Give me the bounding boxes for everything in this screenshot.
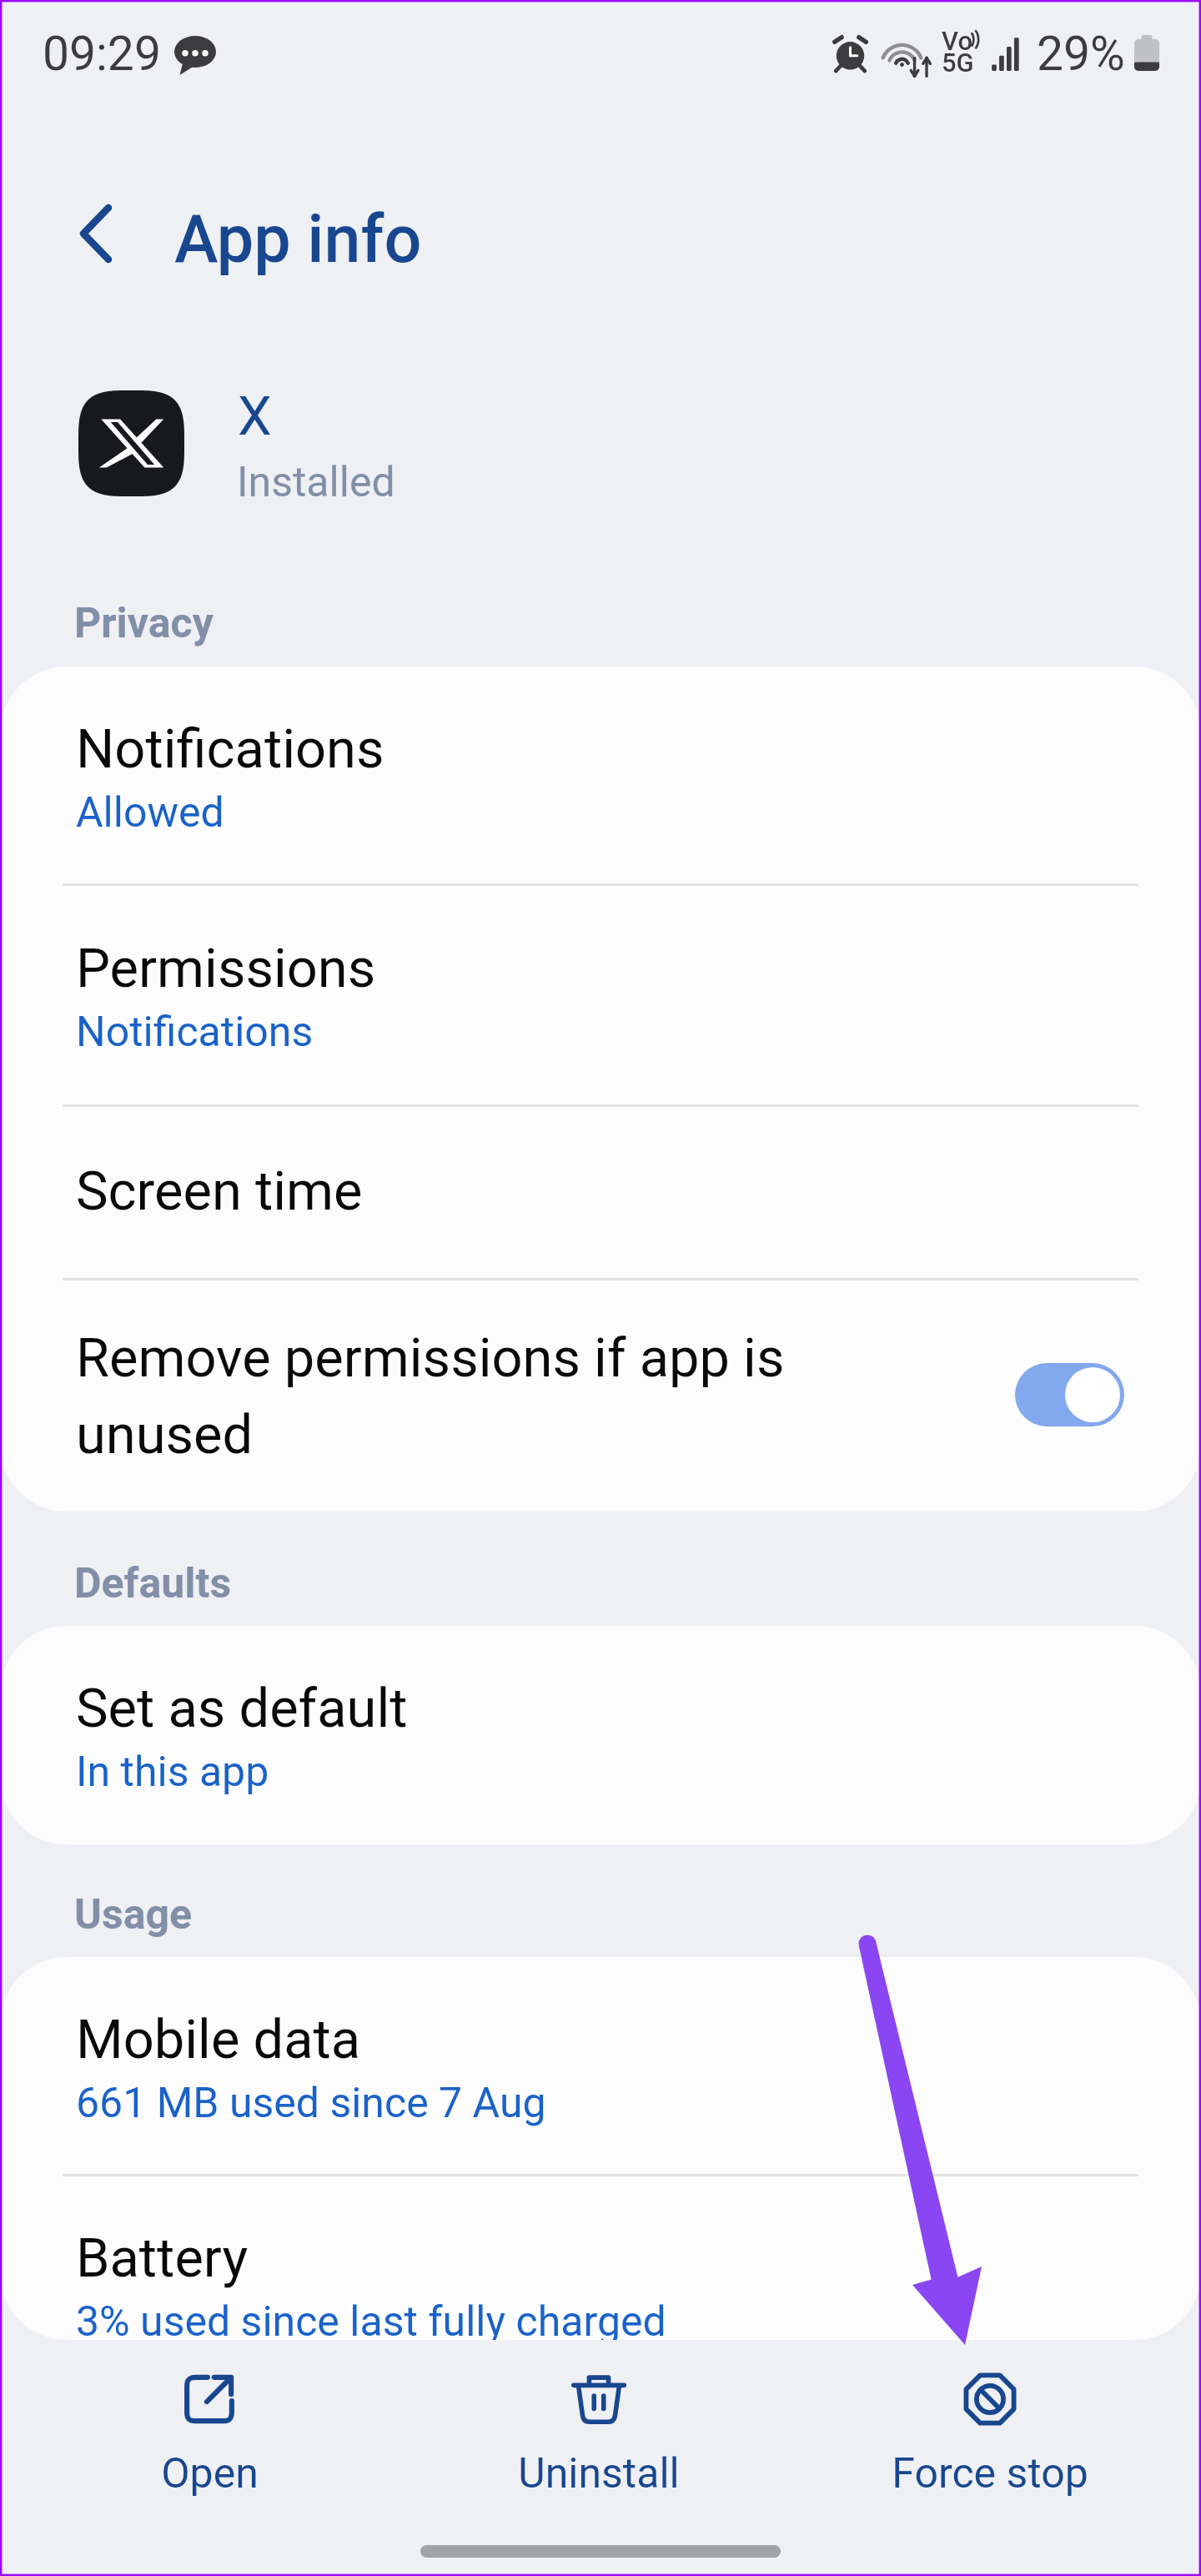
button[interactable]: Back: [55, 192, 138, 275]
staticText: Battery: [76, 2226, 249, 2290]
button[interactable]: Uninstall app: [465, 2340, 732, 2515]
button[interactable]: Notifications: [0, 667, 1201, 883]
button[interactable]: Mobile data: [0, 1957, 1201, 2174]
staticText: 09:29: [43, 26, 161, 82]
button[interactable]: Open app: [76, 2340, 343, 2515]
staticText: Defaults: [74, 1559, 232, 1608]
staticText: Installed: [237, 458, 395, 507]
staticText: 5G: [942, 48, 974, 78]
staticText: Usage: [74, 1890, 193, 1940]
staticText: Notifications: [76, 717, 384, 781]
staticText: Uninstall: [518, 2449, 680, 2498]
staticText: Privacy: [74, 599, 214, 648]
staticText: 661 MB used since 7 Aug: [76, 2079, 546, 2128]
button[interactable]: Force stop app: [857, 2340, 1123, 2515]
button[interactable]: Remove permissions if app is unused: [0, 1278, 1201, 1512]
staticText: 3% used since last fully charged: [76, 2297, 666, 2340]
button[interactable]: Screen time: [0, 1104, 1201, 1278]
button[interactable]: Permissions: [0, 883, 1201, 1104]
staticText: Permissions: [76, 937, 376, 1000]
staticText: Set as default: [76, 1677, 408, 1740]
staticText: Notifications: [76, 1008, 314, 1057]
staticText: Allowed: [76, 788, 224, 838]
staticText: Force stop: [892, 2449, 1088, 2498]
staticText: Open: [161, 2449, 259, 2498]
staticText: 29%: [1037, 26, 1125, 82]
staticText: In this app: [76, 1748, 269, 1797]
staticText: Remove permissions if app is unused: [76, 1326, 810, 1467]
button[interactable]: Battery: [0, 2174, 1201, 2340]
staticText: Screen time: [76, 1160, 363, 1223]
button[interactable]: X: [0, 367, 1201, 517]
staticText: Mobile data: [76, 2008, 361, 2071]
button[interactable]: Set as default: [0, 1626, 1201, 1844]
staticText: X: [238, 385, 272, 448]
staticText: App info: [174, 201, 422, 279]
staticText: Vo: [942, 26, 973, 56]
